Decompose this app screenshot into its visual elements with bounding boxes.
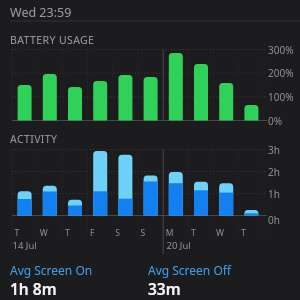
button[interactable] <box>0 0 300 300</box>
